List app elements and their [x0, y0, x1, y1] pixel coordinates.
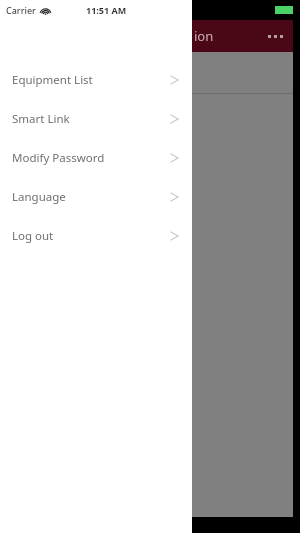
- staticText: Language: [12, 189, 66, 205]
- staticText: Carrier: [6, 4, 36, 16]
- staticText: Equipment List: [12, 72, 93, 88]
- button[interactable]: Log out: [0, 216, 192, 255]
- button[interactable]: Smart Link: [0, 99, 192, 138]
- staticText: Log out: [12, 228, 54, 244]
- button[interactable]: Equipment List: [0, 60, 192, 99]
- staticText: Smart Link: [12, 111, 70, 127]
- button[interactable]: Modify Password: [0, 138, 192, 177]
- button[interactable]: Language: [0, 177, 192, 216]
- staticText: Modify Password: [12, 150, 105, 166]
- staticText: 11:51 AM: [86, 4, 127, 16]
- staticText: ion: [194, 27, 214, 45]
- button[interactable]: More options: [268, 35, 283, 38]
